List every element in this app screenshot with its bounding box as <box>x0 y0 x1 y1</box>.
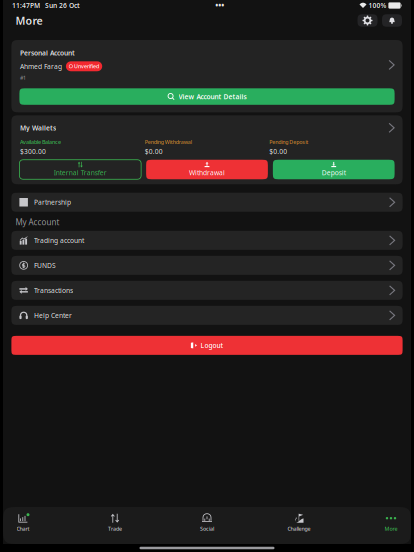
button[interactable]: Trade <box>69 514 161 532</box>
staticText: Pending Withdrawal <box>145 138 192 145</box>
staticText: Withdrawal <box>189 168 225 177</box>
staticText: $300.00 <box>20 147 46 156</box>
staticText: $0.00 <box>145 147 163 156</box>
button[interactable]: Challenge <box>253 514 345 532</box>
staticText: View Account Details <box>178 92 246 101</box>
button[interactable]: More <box>345 514 414 532</box>
button[interactable]: Deposit <box>273 160 395 179</box>
staticText: $0.00 <box>269 147 287 156</box>
staticText: 100% <box>368 1 386 10</box>
staticText: Internal Transfer <box>54 168 107 177</box>
button[interactable]: Withdrawal <box>146 160 268 179</box>
staticText: Logout <box>200 341 223 350</box>
staticText: Available Balance <box>20 138 61 145</box>
staticText: #1 <box>20 74 26 81</box>
button[interactable]: Internal Transfer <box>19 160 141 179</box>
staticText: Trade <box>108 525 122 532</box>
staticText: Sun 26 Oct <box>45 1 80 10</box>
staticText: Trading account <box>34 236 84 245</box>
button[interactable]: View Account Details <box>19 88 395 105</box>
staticText: Transactions <box>34 286 73 295</box>
staticText: FUNDS <box>34 261 56 270</box>
staticText: More <box>15 13 42 28</box>
staticText: Help Center <box>34 311 72 320</box>
staticText: 11:47PM <box>12 1 40 10</box>
staticText: More <box>384 525 397 532</box>
staticText: My Wallets <box>20 123 56 132</box>
staticText: Chart <box>16 525 29 532</box>
staticText: My Account <box>15 217 59 227</box>
staticText: Ahmed Farag <box>20 62 62 71</box>
staticText: Challenge <box>287 525 310 532</box>
staticText: Partnership <box>34 198 71 207</box>
staticText: Social <box>200 525 214 532</box>
button[interactable]: Partnership <box>11 193 403 212</box>
button[interactable]: Trading account <box>11 231 403 250</box>
staticText: Unverified <box>74 63 99 70</box>
button[interactable]: Help Center <box>11 306 403 325</box>
button[interactable]: Chart <box>0 514 69 532</box>
staticText: Personal Account <box>20 48 75 57</box>
button[interactable]: Notifications <box>382 14 402 27</box>
button[interactable]: Transactions <box>11 281 403 300</box>
button[interactable]: Settings <box>357 14 377 27</box>
staticText: Deposit <box>322 168 346 177</box>
staticText: Pending Deposit <box>269 138 308 145</box>
button[interactable]: FUNDS <box>11 256 403 275</box>
button[interactable]: Social <box>161 514 253 532</box>
staticText: ••• <box>215 0 224 11</box>
button[interactable]: Logout <box>11 336 403 355</box>
